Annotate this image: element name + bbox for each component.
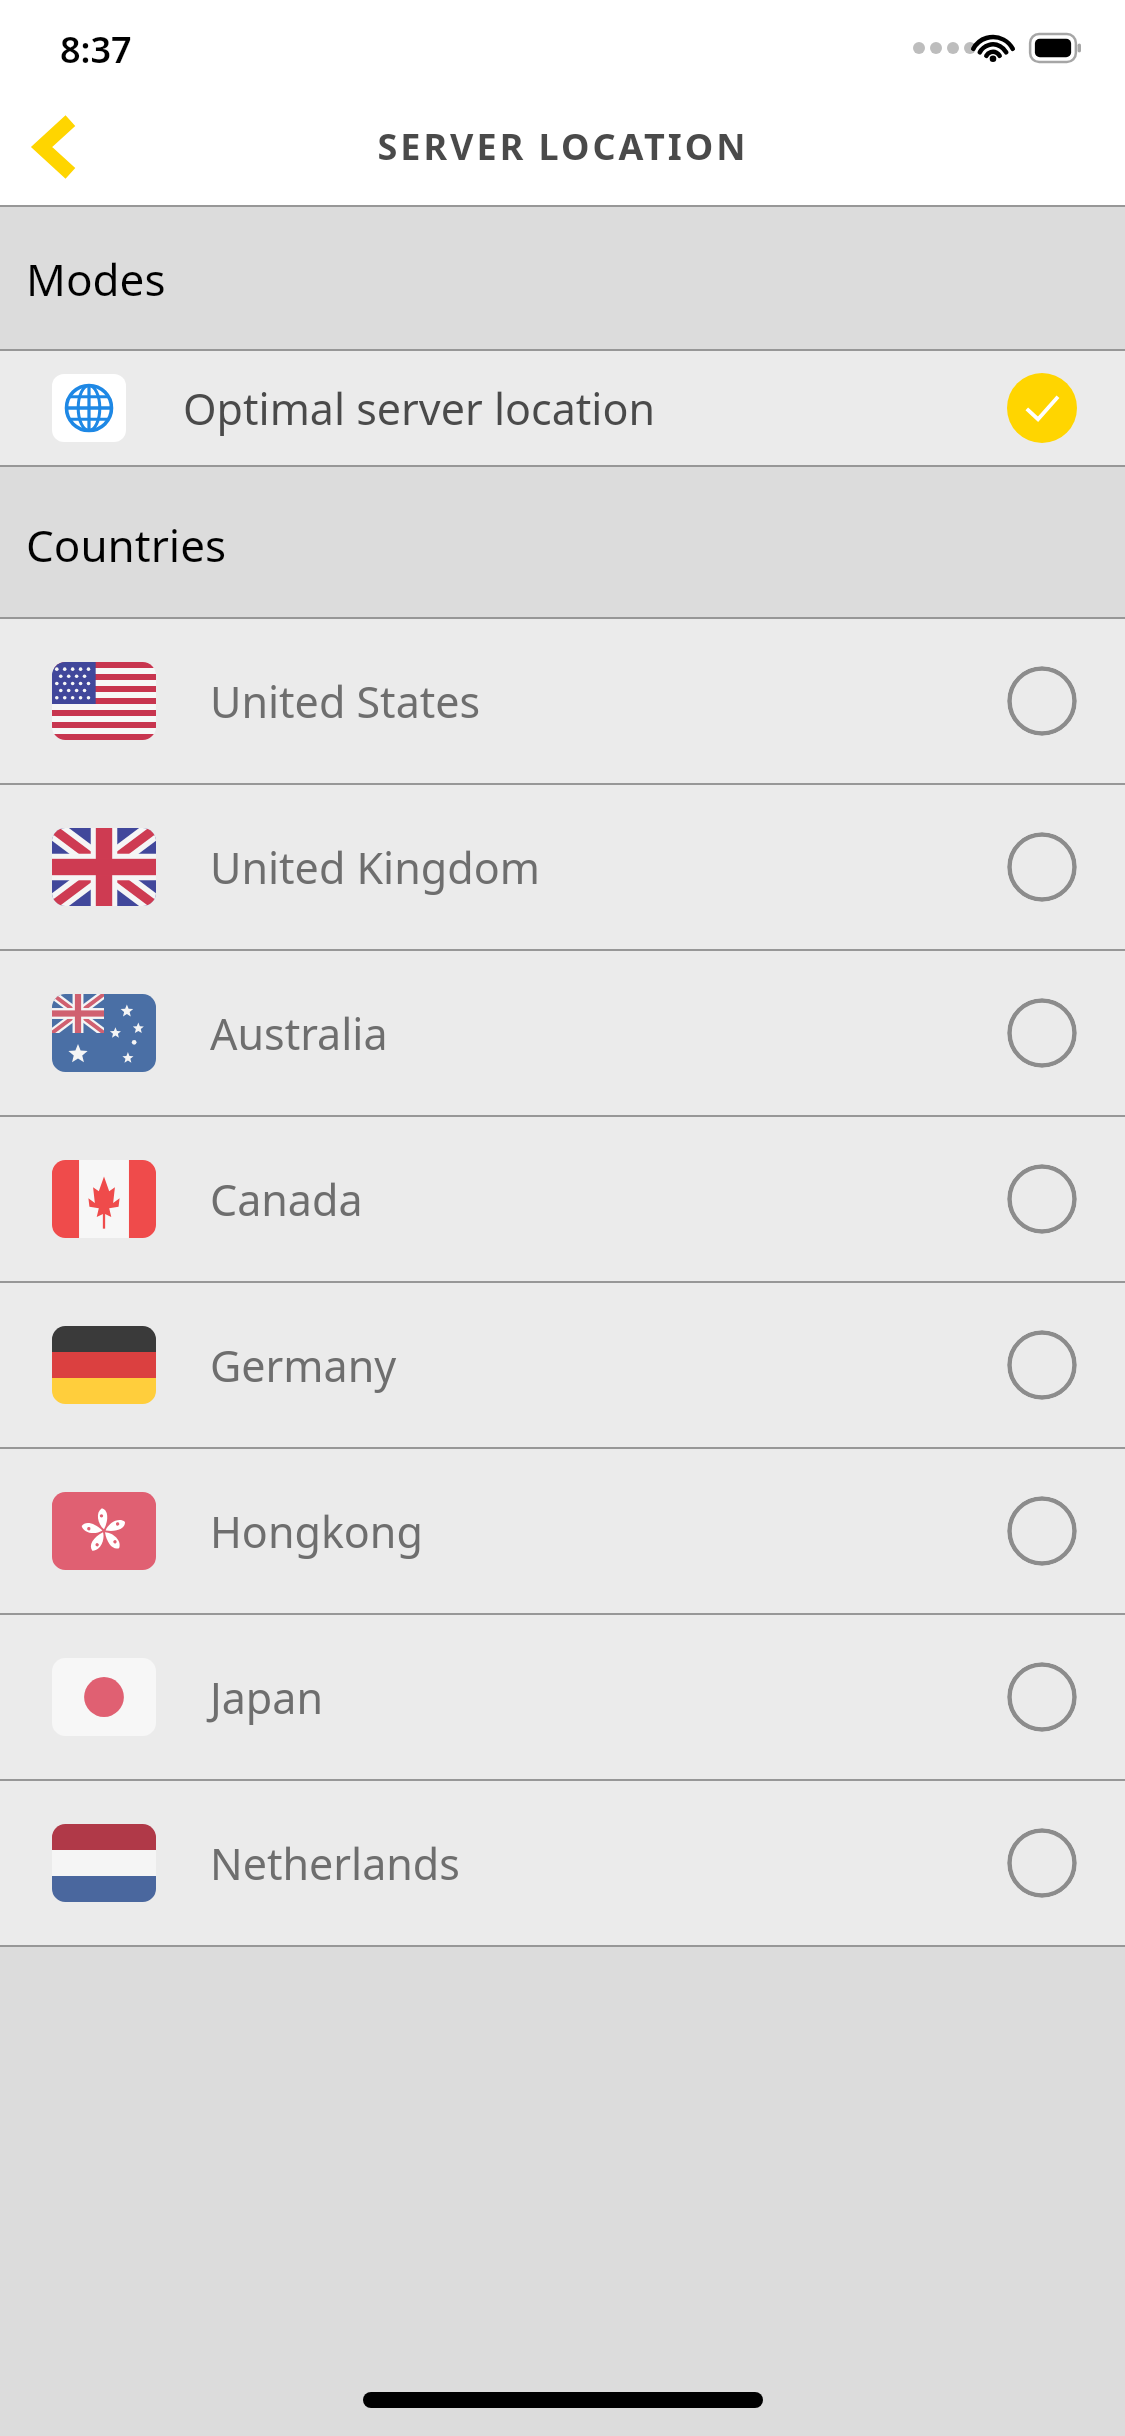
staticText: United Kingdom xyxy=(210,838,540,897)
button[interactable]: Optimal server location selected xyxy=(1007,373,1077,443)
button[interactable]: United States xyxy=(0,619,1125,783)
staticText: Netherlands xyxy=(210,1834,460,1893)
staticText: United States xyxy=(210,672,481,731)
button[interactable]: Select Germany xyxy=(1007,1330,1077,1400)
staticText: 8:37 xyxy=(60,25,132,74)
button[interactable]: Back xyxy=(0,91,112,203)
staticText: Japan xyxy=(210,1668,324,1727)
staticText: Optimal server location xyxy=(183,379,655,438)
button[interactable]: Select Netherlands xyxy=(1007,1828,1077,1898)
button[interactable]: Optimal server location xyxy=(0,351,1125,465)
button[interactable]: United Kingdom xyxy=(0,785,1125,949)
staticText: Hongkong xyxy=(210,1502,423,1561)
button[interactable]: Select Australia xyxy=(1007,998,1077,1068)
button[interactable]: Select Japan xyxy=(1007,1662,1077,1732)
button[interactable]: Australia xyxy=(0,951,1125,1115)
button[interactable]: Select Canada xyxy=(1007,1164,1077,1234)
button[interactable]: Hongkong xyxy=(0,1449,1125,1613)
button[interactable]: Select United States xyxy=(1007,666,1077,736)
button[interactable]: Netherlands xyxy=(0,1781,1125,1945)
staticText: Germany xyxy=(210,1336,397,1395)
button[interactable]: Japan xyxy=(0,1615,1125,1779)
staticText: Modes xyxy=(26,249,166,309)
button[interactable]: Canada xyxy=(0,1117,1125,1281)
staticText: Countries xyxy=(26,515,227,575)
staticText: SERVER LOCATION xyxy=(377,122,749,171)
button[interactable]: Select Hongkong xyxy=(1007,1496,1077,1566)
staticText: Canada xyxy=(210,1170,363,1229)
button[interactable]: Germany xyxy=(0,1283,1125,1447)
button[interactable]: Select United Kingdom xyxy=(1007,832,1077,902)
staticText: Australia xyxy=(210,1004,388,1063)
